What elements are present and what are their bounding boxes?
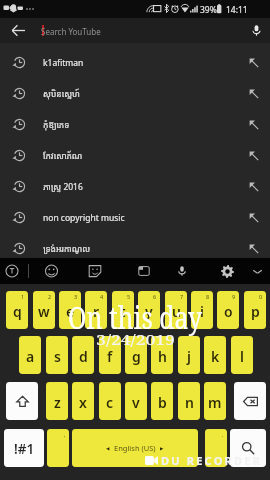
staticText: z <box>54 393 61 412</box>
staticText: e <box>66 302 75 321</box>
staticText: 9 <box>232 293 236 300</box>
button[interactable]: b <box>151 382 173 420</box>
button[interactable]: Collapse keyboard <box>249 258 266 284</box>
staticText: non copyright music <box>43 212 125 224</box>
staticText: v <box>132 393 140 412</box>
staticText: q <box>13 302 22 321</box>
button[interactable]: Settings <box>219 258 236 284</box>
staticText: . <box>222 431 224 438</box>
staticText: កែវសោភ័ណ <box>43 150 83 162</box>
staticText: o <box>224 302 233 321</box>
button[interactable]: d <box>72 336 94 374</box>
button[interactable]: z <box>46 382 68 420</box>
button[interactable]: ភាស្ទ្រ 2016 <box>0 171 270 202</box>
button[interactable]: y <box>138 291 160 329</box>
staticText: w <box>38 302 50 321</box>
button[interactable]: c <box>99 382 121 420</box>
button[interactable]: កុំឱ្យភេទ <box>0 109 270 140</box>
button[interactable]: Search <box>230 429 266 467</box>
staticText: n <box>185 393 194 412</box>
button[interactable]: , <box>47 429 69 467</box>
staticText: s <box>54 347 61 366</box>
button[interactable]: Voice input <box>173 258 190 284</box>
staticText: a <box>26 347 35 366</box>
staticText: f <box>107 347 113 366</box>
button[interactable]: w <box>33 291 55 329</box>
button[interactable]: v <box>125 382 147 420</box>
staticText: p <box>251 302 260 321</box>
button[interactable]: l <box>231 336 253 374</box>
staticText: y <box>145 302 153 321</box>
staticText: ◀ <box>106 446 110 451</box>
button[interactable]: i <box>191 291 213 329</box>
button[interactable]: Backspace <box>234 382 266 420</box>
staticText: 14:11 <box>226 4 248 16</box>
button[interactable]: s <box>46 336 68 374</box>
staticText: 6 <box>153 293 157 300</box>
button[interactable]: non copyright music <box>0 202 270 233</box>
staticText: !#1 <box>14 440 35 458</box>
staticText: c <box>106 393 114 412</box>
button[interactable]: ◀ <box>72 429 198 467</box>
staticText: k1afitman <box>43 57 84 69</box>
button[interactable]: k <box>204 336 226 374</box>
button[interactable]: Back <box>0 18 36 43</box>
staticText: k <box>211 347 220 366</box>
button[interactable]: t <box>112 291 134 329</box>
button[interactable]: សុបិនស្នេហ៍ <box>0 78 270 109</box>
staticText: t <box>120 302 126 321</box>
button[interactable]: a <box>19 336 41 374</box>
staticText: d <box>79 347 88 366</box>
button[interactable]: k1afitman <box>0 47 270 78</box>
staticText: 3 <box>74 293 78 300</box>
button[interactable]: q <box>6 291 28 329</box>
staticText: 7 <box>180 293 184 300</box>
staticText: សុបិនស្នេហ៍ <box>43 88 80 100</box>
staticText: j <box>187 347 191 366</box>
staticText: ភាស្ទ្រ 2016 <box>43 181 83 193</box>
button[interactable]: . <box>205 429 227 467</box>
button[interactable]: !#1 <box>4 429 44 467</box>
button[interactable]: x <box>72 382 94 420</box>
button[interactable]: Voice search <box>242 18 270 43</box>
staticText: i <box>200 302 204 321</box>
staticText: 0 <box>259 293 263 300</box>
button[interactable]: e <box>59 291 81 329</box>
staticText: b <box>158 393 167 412</box>
button[interactable]: u <box>165 291 187 329</box>
button[interactable]: p <box>244 291 266 329</box>
button[interactable]: j <box>178 336 200 374</box>
staticText: Search YouTube <box>41 26 101 37</box>
staticText: 39% <box>200 4 217 16</box>
staticText: 2 <box>48 293 52 300</box>
button[interactable]: h <box>151 336 173 374</box>
staticText: h <box>158 347 167 366</box>
staticText: ▶ <box>160 446 164 451</box>
staticText: DU RECORDER <box>161 453 262 468</box>
button[interactable]: ទ្រង់អរកាណូល <box>0 233 270 264</box>
button[interactable]: កែវសោភ័ណ <box>0 140 270 171</box>
staticText: 1 <box>21 293 25 300</box>
staticText: On this day <box>68 297 202 338</box>
staticText: g <box>132 347 141 366</box>
staticText: , <box>64 431 66 438</box>
staticText: 4 <box>100 293 104 300</box>
button[interactable]: r <box>85 291 107 329</box>
staticText: 8 <box>206 293 210 300</box>
staticText: l <box>240 347 244 366</box>
button[interactable]: m <box>204 382 226 420</box>
staticText: x <box>79 393 87 412</box>
staticText: m <box>208 393 222 412</box>
staticText: English (US) <box>114 443 156 453</box>
staticText: 3/24/2019 <box>96 331 175 349</box>
staticText: r <box>93 302 100 321</box>
button[interactable]: o <box>217 291 239 329</box>
button[interactable]: f <box>99 336 121 374</box>
staticText: ទ្រង់អរកាណូល <box>43 243 91 255</box>
button[interactable]: n <box>178 382 200 420</box>
button[interactable]: Shift <box>6 382 38 420</box>
button[interactable]: g <box>125 336 147 374</box>
staticText: កុំឱ្យភេទ <box>43 119 70 131</box>
staticText: 5 <box>127 293 131 300</box>
staticText: u <box>172 302 181 321</box>
